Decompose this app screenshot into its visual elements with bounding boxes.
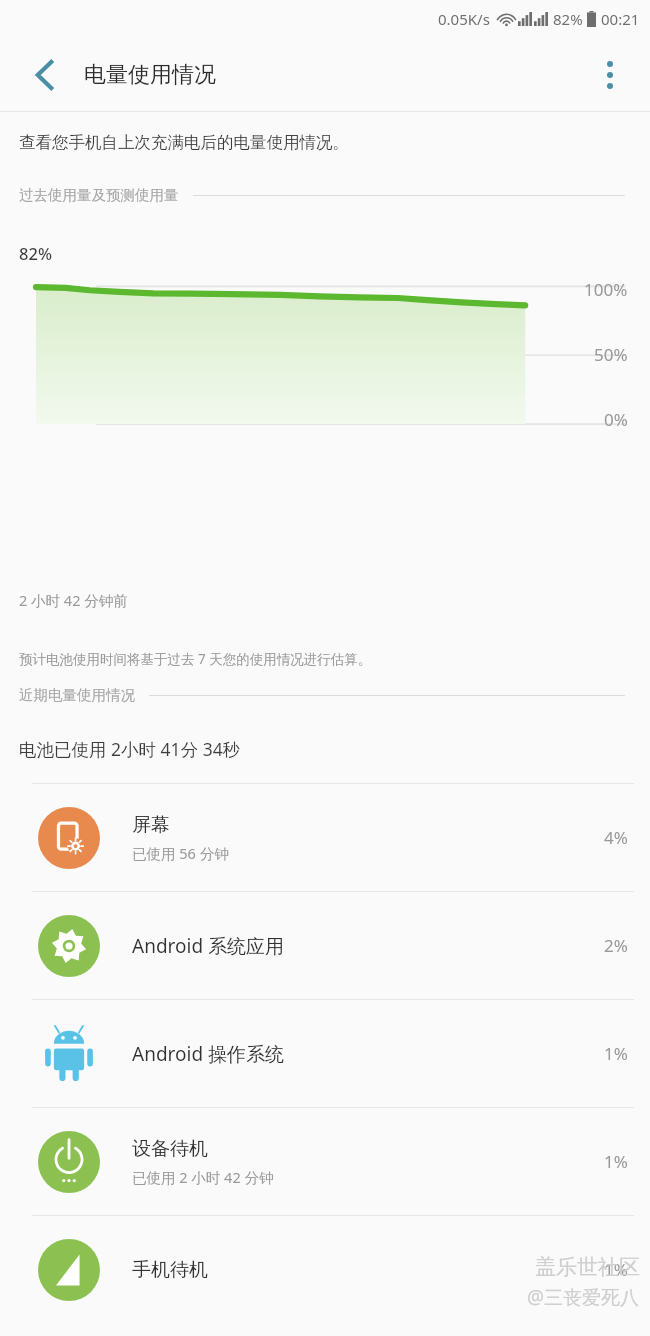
button[interactable]: Android 操作系统 (0, 1000, 650, 1107)
staticText: 盖乐世社区 (535, 1254, 640, 1280)
button[interactable]: Back (22, 53, 66, 97)
staticText: @三丧爱死八 (527, 1284, 640, 1310)
staticText: Android 系统应用 (132, 933, 285, 959)
staticText: 电池已使用 2小时 41分 34秒 (19, 737, 241, 761)
staticText: 2% (604, 934, 628, 957)
staticText: 82% (553, 9, 583, 29)
staticText: Android 操作系统 (132, 1041, 285, 1067)
staticText: 预计电池使用时间将基于过去 7 天您的使用情况进行估算。 (19, 650, 372, 668)
staticText: 过去使用量及预测使用量 (19, 186, 179, 204)
staticText: 00:21 (601, 9, 640, 29)
button[interactable]: 设备待机 (0, 1108, 650, 1215)
staticText: 已使用 56 分钟 (132, 843, 229, 863)
staticText: 2 小时 42 分钟前 (19, 590, 128, 610)
staticText: 0% (604, 408, 628, 431)
staticText: 近期电量使用情况 (19, 686, 135, 704)
staticText: 50% (594, 343, 628, 366)
staticText: 查看您手机自上次充满电后的电量使用情况。 (19, 132, 349, 153)
staticText: 手机待机 (132, 1258, 208, 1282)
staticText: 1% (604, 1150, 628, 1173)
button[interactable]: 屏幕 (0, 784, 650, 891)
button[interactable]: 手机待机 (0, 1216, 650, 1323)
button[interactable]: Android 系统应用 (0, 892, 650, 999)
staticText: 0.05K/s (438, 9, 490, 29)
button[interactable]: More options (588, 53, 632, 97)
staticText: 82% (19, 242, 52, 264)
staticText: 屏幕 (132, 813, 170, 837)
staticText: 设备待机 (132, 1137, 208, 1161)
staticText: 4% (604, 826, 628, 849)
staticText: 1% (604, 1042, 628, 1065)
staticText: 已使用 2 小时 42 分钟 (132, 1167, 274, 1187)
staticText: 电量使用情况 (84, 61, 216, 89)
staticText: 1% (604, 1258, 628, 1281)
staticText: 100% (584, 278, 628, 301)
